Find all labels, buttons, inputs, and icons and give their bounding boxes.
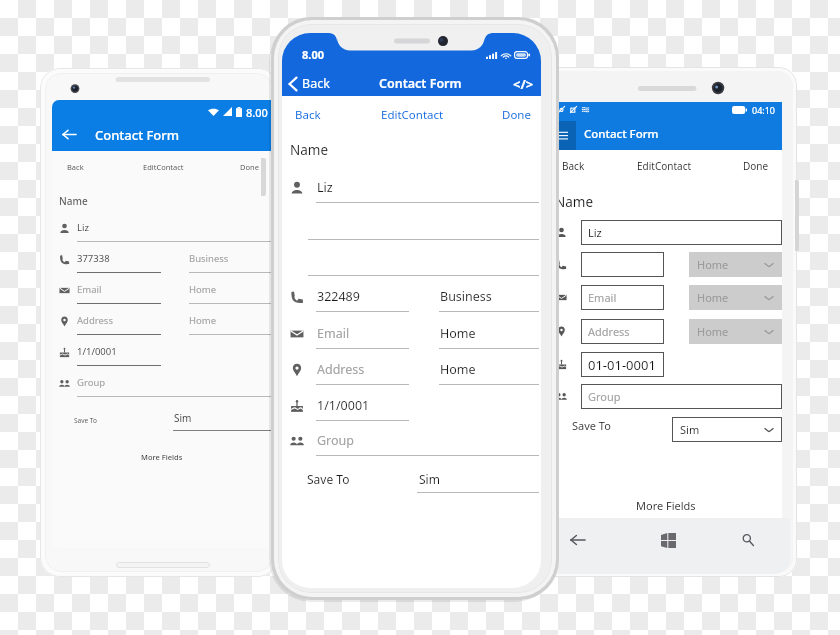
button[interactable]: Done [483,102,541,128]
button[interactable]: Back [61,126,77,142]
button[interactable]: EditContact [379,102,445,128]
button[interactable]: More Fields [634,496,698,513]
staticText: Sim [174,411,192,425]
button[interactable]: Save To [52,409,286,435]
staticText: Home [697,290,729,305]
button[interactable]: Group [282,429,541,456]
button[interactable]: Email [282,322,541,349]
button[interactable]: 377338 [52,250,286,273]
staticText: Name [555,193,594,211]
button[interactable]: Back [282,102,341,128]
button[interactable]: Home [689,285,782,310]
button[interactable]: Group [581,384,782,409]
button[interactable]: Home [689,319,782,344]
staticText: EditContact [143,162,184,172]
staticText: Home [440,325,476,342]
staticText: 8.00 [302,47,324,62]
staticText: Liz [588,225,602,240]
button[interactable]: Back [287,75,331,92]
button[interactable]: Back [558,518,598,562]
staticText: 01-01-0001 [588,356,656,374]
button[interactable]: Address [581,319,664,344]
staticText: Group [77,376,106,389]
staticText: Sim [419,471,440,487]
staticText: 322489 [317,288,360,305]
button[interactable]: Sim [672,417,782,442]
staticText: Email [317,325,350,342]
staticText: 8.00 [246,105,268,118]
staticText: 1/1/0001 [77,345,117,358]
staticText: Name [59,194,88,208]
button[interactable]: Done [219,154,279,179]
button[interactable]: More Fields [138,449,186,465]
button[interactable]: Email [52,281,286,304]
staticText: Address [588,324,630,339]
staticText: Email [588,290,617,305]
button[interactable]: Source code [511,75,536,93]
staticText: Contact Form [379,75,462,92]
button[interactable]: Start [648,518,688,562]
staticText: Back [302,75,330,92]
staticText: Liz [77,221,89,234]
staticText: Group [317,432,354,449]
button[interactable]: Liz [282,176,541,203]
button[interactable]: Menu [549,121,576,150]
staticText: Group [588,389,621,404]
button[interactable]: Liz [52,219,286,242]
staticText: Done [502,107,531,123]
staticText: Home [697,257,729,272]
staticText: Sim [680,422,700,437]
button[interactable]: Address [52,312,286,335]
button[interactable]: Email [581,285,664,310]
button[interactable]: Address [282,358,541,385]
staticText: Save To [307,471,350,487]
staticText: Address [317,361,365,378]
button[interactable]: Liz [581,220,782,245]
staticText: 377338 [77,252,110,265]
staticText: Done [743,159,769,173]
staticText: Contact Form [584,126,659,142]
button[interactable]: 322489 [282,285,541,312]
staticText: Back [295,107,321,123]
button[interactable]: Back [562,159,585,173]
button[interactable]: Home [689,252,782,277]
button[interactable]: 1/1/0001 [52,343,286,366]
button[interactable]: EditContact [133,154,193,179]
button[interactable]: Save To [282,467,541,495]
button[interactable]: Back [52,154,105,179]
staticText: Home [697,324,729,339]
staticText: Home [189,314,217,327]
staticText: Name [290,141,329,159]
button[interactable]: 1/1/0001 [282,394,541,421]
button[interactable]: EditContact [637,159,692,173]
staticText: Email [77,283,102,296]
staticText: 04:10 [752,104,776,116]
staticText: Done [240,162,259,172]
staticText: EditContact [637,159,692,173]
staticText: Address [77,314,113,327]
staticText: More Fields [636,498,696,511]
staticText: Contact Form [95,126,180,144]
staticText: Back [67,162,84,172]
staticText: More Fields [141,452,183,462]
staticText: Home [440,361,476,378]
staticText: Home [189,283,217,296]
button[interactable]: 01-01-0001 [581,352,664,377]
button[interactable]: Group [52,374,286,397]
staticText: Save To [74,416,97,425]
button[interactable]: Done [743,159,769,173]
staticText: Business [189,252,229,265]
staticText: 1/1/0001 [317,397,370,414]
staticText: </> [513,75,534,93]
button[interactable]: Back [52,119,286,149]
staticText: Business [440,288,492,305]
staticText: Save To [572,418,611,433]
button[interactable]: Search [728,518,768,562]
staticText: Liz [317,179,333,196]
button[interactable] [581,252,664,277]
staticText: EditContact [381,107,444,123]
staticText: Back [562,159,585,173]
